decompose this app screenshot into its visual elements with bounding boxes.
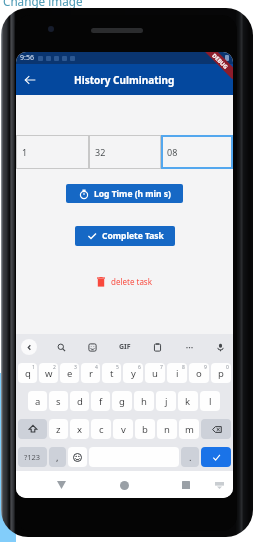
button[interactable]: Recents — [177, 474, 195, 496]
staticText: 6 — [138, 364, 141, 371]
staticText: Change image — [3, 0, 83, 9]
staticText: , — [56, 451, 59, 464]
staticText: ?123 — [24, 452, 41, 462]
button[interactable]: GIF — [116, 339, 134, 355]
staticText: j — [165, 395, 168, 408]
button[interactable]: s — [49, 391, 68, 411]
staticText: 1 — [22, 146, 28, 158]
button[interactable]: u — [145, 363, 165, 383]
staticText: 1 — [32, 364, 35, 371]
staticText: delete task — [111, 276, 152, 287]
button[interactable]: clipboard — [149, 339, 165, 355]
staticText: 5 — [116, 364, 119, 371]
staticText: c — [99, 423, 104, 436]
button[interactable]: Back — [52, 474, 70, 496]
staticText: . — [189, 451, 192, 464]
button[interactable]: t — [102, 363, 121, 383]
button[interactable]: x — [70, 419, 89, 439]
button[interactable]: z — [49, 419, 68, 439]
button[interactable]: b — [135, 419, 155, 439]
staticText: 8 — [182, 364, 185, 371]
staticText: GIF — [119, 342, 131, 352]
button[interactable]: w — [39, 363, 58, 383]
staticText: v — [121, 423, 126, 436]
staticText: w — [45, 367, 53, 380]
staticText: History Culminating — [74, 73, 175, 87]
button[interactable]: 1 — [16, 135, 89, 169]
staticText: DEBUG — [211, 52, 230, 70]
button[interactable]: n — [157, 419, 177, 439]
button[interactable]: Enter — [201, 447, 231, 467]
button[interactable]: Expand toolbar — [21, 339, 37, 355]
button[interactable]: Shift — [18, 419, 47, 439]
staticText: o — [196, 367, 202, 380]
staticText: 0 — [226, 364, 229, 371]
button[interactable]: 08 — [161, 135, 233, 169]
button[interactable]: c — [91, 419, 111, 439]
button[interactable]: f — [91, 391, 110, 411]
staticText: 32 — [95, 146, 106, 158]
staticText: z — [56, 423, 61, 436]
button[interactable]: m — [179, 419, 199, 439]
button[interactable]: v — [113, 419, 133, 439]
staticText: x — [77, 423, 83, 436]
button[interactable]: sticker — [84, 339, 100, 355]
button[interactable]: Change image — [3, 0, 83, 9]
staticText: m — [185, 423, 194, 436]
button[interactable]: o — [189, 363, 209, 383]
staticText: e — [67, 367, 73, 380]
button[interactable]: mic — [212, 339, 228, 355]
button[interactable]: h — [134, 391, 154, 411]
staticText: y — [131, 367, 136, 380]
staticText: t — [110, 367, 114, 380]
button[interactable]: Backspace — [201, 419, 231, 439]
button[interactable]: e — [60, 363, 79, 383]
button[interactable]: p — [211, 363, 231, 383]
button[interactable]: Back — [19, 69, 41, 91]
button[interactable]: k — [178, 391, 198, 411]
button[interactable]: j — [156, 391, 176, 411]
staticText: Log Time (h min s) — [94, 188, 171, 200]
button[interactable]: g — [112, 391, 132, 411]
button[interactable]: Emoji — [68, 447, 87, 467]
staticText: 7 — [160, 364, 163, 371]
staticText: p — [218, 367, 224, 380]
button[interactable]: d — [70, 391, 89, 411]
staticText: q — [25, 367, 31, 380]
button[interactable]: Hide keyboard — [210, 474, 228, 496]
button[interactable]: r — [81, 363, 100, 383]
button[interactable]: Home — [115, 474, 133, 496]
button[interactable]: search — [53, 339, 69, 355]
button[interactable]: ?123 — [18, 447, 47, 467]
button[interactable]: l — [200, 391, 220, 411]
staticText: 08 — [167, 146, 178, 158]
button[interactable]: a — [28, 391, 47, 411]
staticText: 9 — [204, 364, 207, 371]
staticText: d — [77, 395, 83, 408]
staticText: b — [142, 423, 148, 436]
staticText: k — [185, 395, 191, 408]
staticText: f — [99, 395, 103, 408]
staticText: l — [209, 395, 212, 408]
button[interactable]: q — [18, 363, 37, 383]
button[interactable]: y — [123, 363, 143, 383]
staticText: a — [35, 395, 41, 408]
staticText: u — [152, 367, 158, 380]
staticText: n — [164, 423, 170, 436]
button[interactable]: i — [167, 363, 187, 383]
button[interactable]: Log Time (h min s) — [66, 184, 183, 203]
button[interactable]: more — [181, 339, 197, 355]
staticText: h — [141, 395, 147, 408]
staticText: i — [176, 367, 179, 380]
staticText: g — [119, 395, 125, 408]
button[interactable]: 32 — [89, 135, 161, 169]
staticText: Complete Task — [102, 230, 164, 242]
staticText: r — [89, 367, 93, 380]
staticText: 3 — [74, 364, 77, 371]
button[interactable]: . — [181, 447, 199, 467]
button[interactable]: Complete Task — [75, 226, 175, 246]
button[interactable]: delete task — [93, 273, 156, 290]
staticText: s — [56, 395, 61, 408]
button[interactable]: , — [49, 447, 66, 467]
